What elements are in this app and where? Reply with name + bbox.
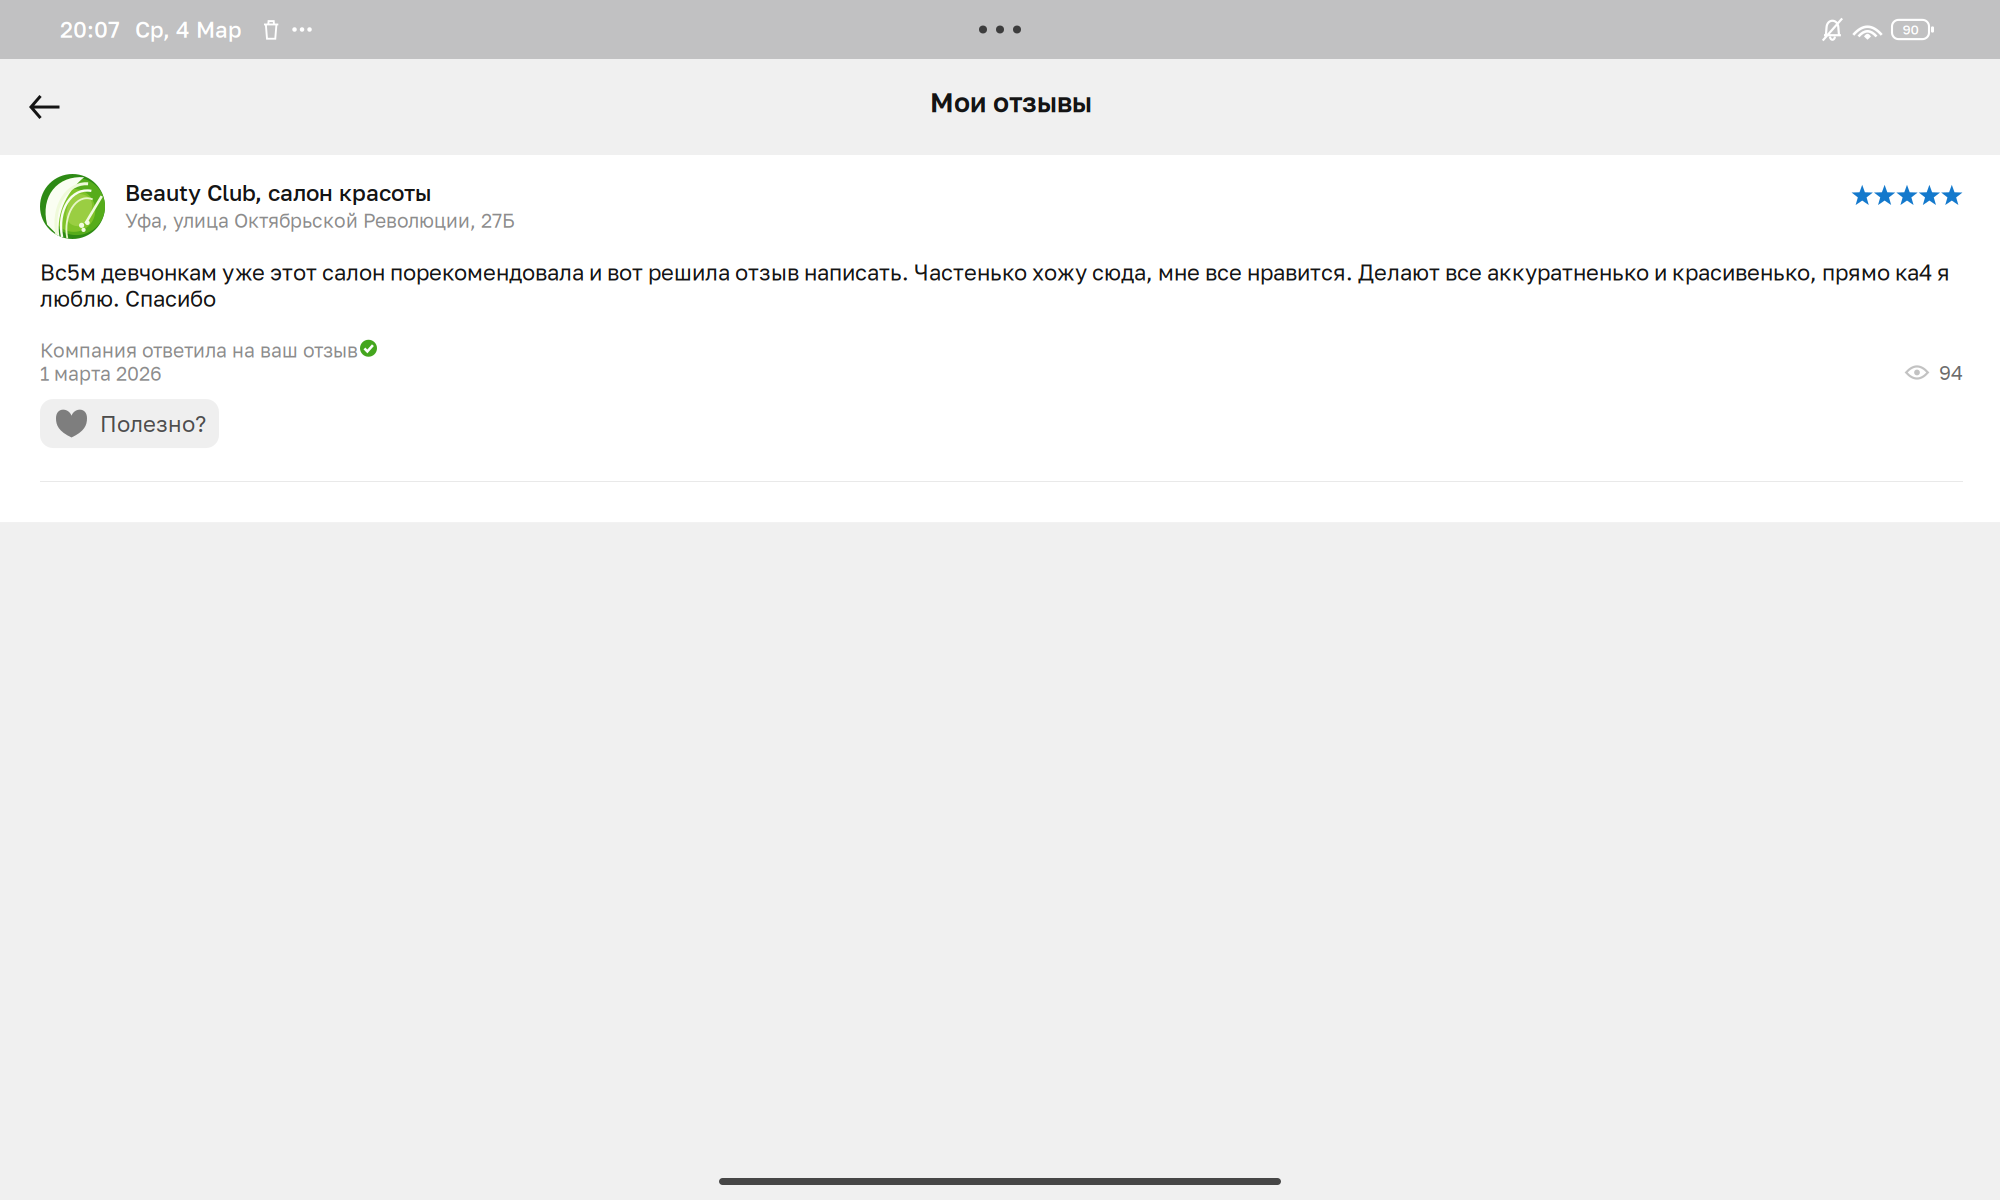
staticText: 1 марта 2026 — [40, 362, 162, 385]
button[interactable]: Beauty Club, салон красоты — [40, 155, 1963, 239]
staticText: Мои отзывы — [930, 86, 1092, 118]
button[interactable]: Полезно? — [40, 399, 219, 448]
staticText: Компания ответила на ваш отзыв — [40, 339, 358, 362]
staticText: 20:07 — [60, 16, 120, 43]
button[interactable]: Назад — [0, 59, 89, 155]
staticText: Полезно? — [100, 410, 206, 437]
staticText: 94 — [1939, 361, 1963, 384]
staticText: Вс5м девчонкам уже этот салон порекоменд… — [40, 259, 1950, 312]
staticText: Ср, 4 Мар — [135, 16, 242, 43]
staticText: Beauty Club, салон красоты — [125, 179, 432, 206]
staticText: Уфа, улица Октябрьской Революции, 27Б — [125, 209, 515, 232]
staticText: 90 — [1902, 21, 1918, 37]
